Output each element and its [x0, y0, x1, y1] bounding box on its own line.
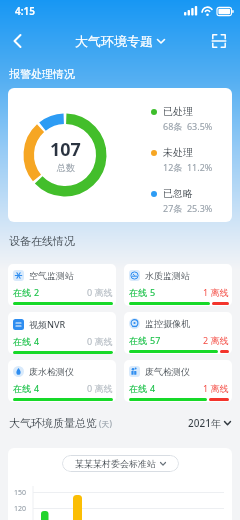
button[interactable]: 2021年 [188, 416, 231, 430]
staticText: 在线 [129, 286, 150, 298]
staticText: 57 [150, 334, 161, 346]
staticText: 2 离线 [203, 334, 229, 346]
staticText: 总数 [57, 162, 75, 173]
staticText: 27条 25.3% [163, 202, 213, 214]
staticText: 0 离线 [87, 286, 113, 298]
button[interactable]: 水质监测站 [124, 264, 232, 306]
staticText: 监控摄像机 [145, 318, 190, 329]
staticText: 设备在线情况 [9, 234, 75, 248]
staticText: 2021年 [188, 416, 221, 430]
staticText: 4 [150, 382, 156, 394]
button[interactable] [6, 30, 28, 52]
staticText: 4 [34, 382, 40, 394]
staticText: 在线 [13, 382, 34, 394]
staticText: 废水检测仪 [29, 366, 74, 377]
staticText: 在线 [129, 382, 150, 394]
staticText: 0 离线 [87, 335, 113, 347]
staticText: 空气监测站 [29, 270, 74, 281]
staticText: 在线 [13, 286, 34, 298]
staticText: 68条 63.5% [163, 120, 213, 132]
button[interactable]: 空气监测站 [8, 264, 116, 306]
staticText: 4:15 [15, 4, 35, 18]
staticText: 已忽略 [163, 187, 193, 200]
staticText: 未处理 [163, 146, 193, 159]
button[interactable]: 视频NVR [8, 312, 116, 354]
staticText: 水质监测站 [145, 270, 190, 281]
staticText: 4 [34, 335, 40, 347]
button[interactable]: 某某某村委会标准站 [62, 455, 179, 472]
staticText: 在线 [13, 335, 34, 347]
button[interactable]: 监控摄像机 [124, 312, 232, 354]
staticText: 107 [50, 137, 81, 162]
staticText: 大气环境专题 [75, 33, 153, 49]
staticText: 视频NVR [29, 318, 66, 330]
button[interactable]: 107 [8, 88, 232, 222]
staticText: 150 [14, 488, 27, 498]
staticText: 在线 [129, 334, 150, 346]
staticText: 已处理 [163, 105, 193, 118]
staticText: 1 离线 [203, 286, 229, 298]
staticText: (天) [99, 418, 112, 429]
staticText: 5 [150, 286, 156, 298]
staticText: 1 离线 [203, 382, 229, 394]
button[interactable] [209, 31, 229, 51]
button[interactable]: 废气检测仪 [124, 360, 232, 402]
button[interactable]: 废水检测仪 [8, 360, 116, 402]
staticText: 废气检测仪 [145, 366, 190, 377]
button[interactable]: 大气环境专题 [75, 33, 165, 49]
staticText: 某某某村委会标准站 [75, 458, 156, 469]
staticText: 大气环境质量总览 [9, 416, 97, 430]
staticText: 2 [34, 286, 40, 298]
staticText: 120 [14, 504, 27, 514]
staticText: 0 离线 [87, 382, 113, 394]
staticText: 报警处理情况 [9, 67, 75, 81]
staticText: 12条 11.2% [163, 161, 213, 173]
